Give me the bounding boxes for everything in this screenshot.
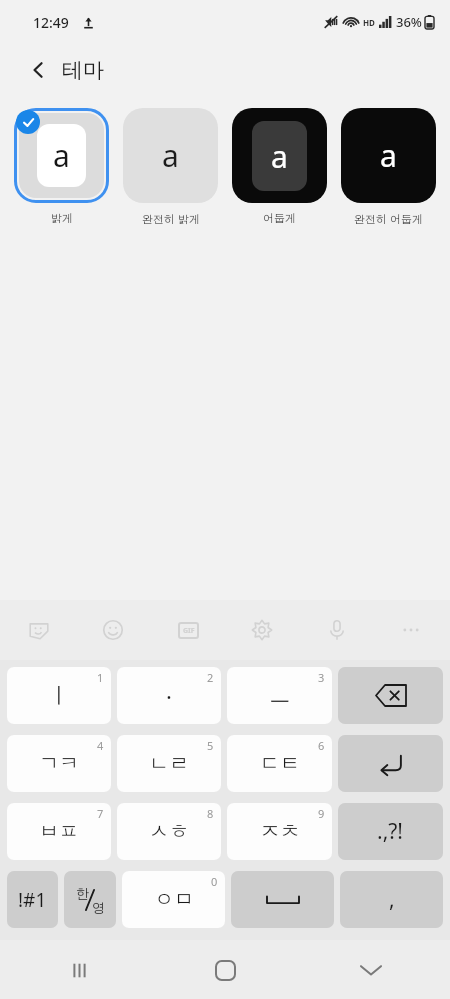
button[interactable]: 한: [64, 871, 116, 928]
button[interactable]: ,: [340, 871, 443, 928]
staticText: 완전히 어둡게: [354, 211, 423, 226]
button[interactable]: ㅈㅊ: [227, 803, 332, 860]
staticText: a: [380, 135, 397, 176]
button[interactable]: Space: [231, 871, 334, 928]
button[interactable]: Sticker: [20, 611, 58, 649]
button[interactable]: ㄷㅌ: [227, 735, 332, 792]
button[interactable]: ㅂㅍ: [7, 803, 111, 860]
staticText: a: [271, 136, 288, 177]
staticText: 6: [318, 738, 325, 753]
button[interactable]: a: [14, 108, 109, 225]
staticText: 한: [76, 885, 89, 901]
staticText: ㅡ: [269, 682, 291, 710]
button[interactable]: a: [341, 108, 436, 226]
staticText: HD: [363, 17, 375, 28]
staticText: 8: [207, 806, 214, 821]
button[interactable]: Microphone: [318, 611, 356, 649]
staticText: a: [53, 135, 70, 176]
button[interactable]: ㅅㅎ: [117, 803, 221, 860]
staticText: 5: [207, 738, 214, 753]
staticText: 2: [207, 670, 214, 685]
staticText: ㅂㅍ: [39, 819, 79, 844]
button[interactable]: GIF: [169, 611, 207, 649]
staticText: 7: [97, 806, 104, 821]
staticText: ㅇㅁ: [154, 887, 194, 912]
button[interactable]: ·: [117, 667, 221, 724]
staticText: GIF: [183, 626, 195, 636]
button[interactable]: ㅣ: [7, 667, 111, 724]
button[interactable]: Settings: [243, 611, 281, 649]
staticText: !#1: [18, 887, 47, 913]
staticText: 테마: [62, 57, 104, 83]
button[interactable]: !#1: [7, 871, 58, 928]
button[interactable]: ㅡ: [227, 667, 332, 724]
button[interactable]: Recents: [56, 947, 102, 993]
staticText: 4: [97, 738, 104, 753]
staticText: 밝게: [51, 211, 73, 225]
button[interactable]: Emoji: [94, 611, 132, 649]
button[interactable]: ㄴㄹ: [117, 735, 221, 792]
button[interactable]: Hide keyboard: [348, 947, 394, 993]
staticText: ㅈㅊ: [260, 819, 300, 844]
staticText: 9: [318, 806, 325, 821]
staticText: 3: [318, 670, 325, 685]
staticText: 0: [211, 874, 218, 889]
staticText: ㅣ: [48, 682, 70, 710]
button[interactable]: a: [232, 108, 327, 225]
staticText: ㄷㅌ: [260, 751, 300, 776]
button[interactable]: .,?!: [338, 803, 443, 860]
button[interactable]: ㅇㅁ: [122, 871, 225, 928]
staticText: ㅅㅎ: [149, 819, 189, 844]
staticText: 1: [97, 670, 104, 685]
staticText: ㄱㅋ: [39, 751, 79, 776]
staticText: ㄴㄹ: [149, 751, 189, 776]
staticText: ,: [389, 885, 395, 914]
staticText: a: [162, 135, 179, 176]
staticText: 영: [92, 899, 105, 915]
staticText: 36%: [396, 13, 422, 31]
button[interactable]: a: [123, 108, 218, 226]
button[interactable]: Back: [22, 53, 56, 87]
button[interactable]: Backspace: [338, 667, 443, 724]
staticText: ·: [166, 681, 172, 711]
staticText: .,?!: [377, 817, 404, 846]
staticText: 12:49: [33, 13, 69, 32]
staticText: 완전히 밝게: [142, 211, 200, 226]
button[interactable]: Enter: [338, 735, 443, 792]
button[interactable]: Home: [202, 947, 248, 993]
staticText: 어둡게: [263, 211, 296, 225]
button[interactable]: ㄱㅋ: [7, 735, 111, 792]
